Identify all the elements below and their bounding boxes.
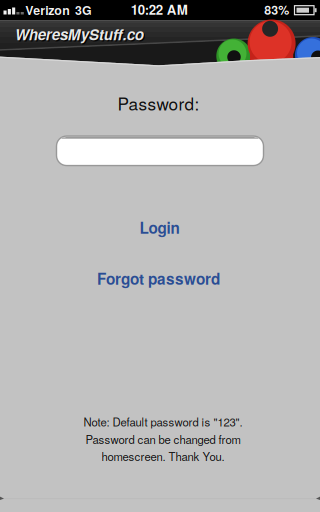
button[interactable]: Forgot password (97, 268, 220, 289)
staticText: 83% (264, 1, 289, 19)
button[interactable]: Login (139, 216, 179, 238)
staticText: Password: (117, 91, 199, 115)
staticText: Verizon (25, 1, 70, 19)
button[interactable]: Password (56, 136, 263, 166)
staticText: Forgot password (97, 268, 220, 289)
staticText: 3G (75, 1, 92, 19)
staticText: WheresMyStuff.co (16, 25, 145, 46)
staticText: Note: Default password is "123". (83, 413, 242, 430)
staticText: 10:22 AM (131, 0, 188, 19)
staticText: WheresMyStuff.co (15, 23, 144, 45)
staticText: Login (139, 216, 179, 238)
staticText: homescreen. Thank You. (101, 448, 224, 464)
staticText: Password can be changed from (85, 431, 240, 447)
